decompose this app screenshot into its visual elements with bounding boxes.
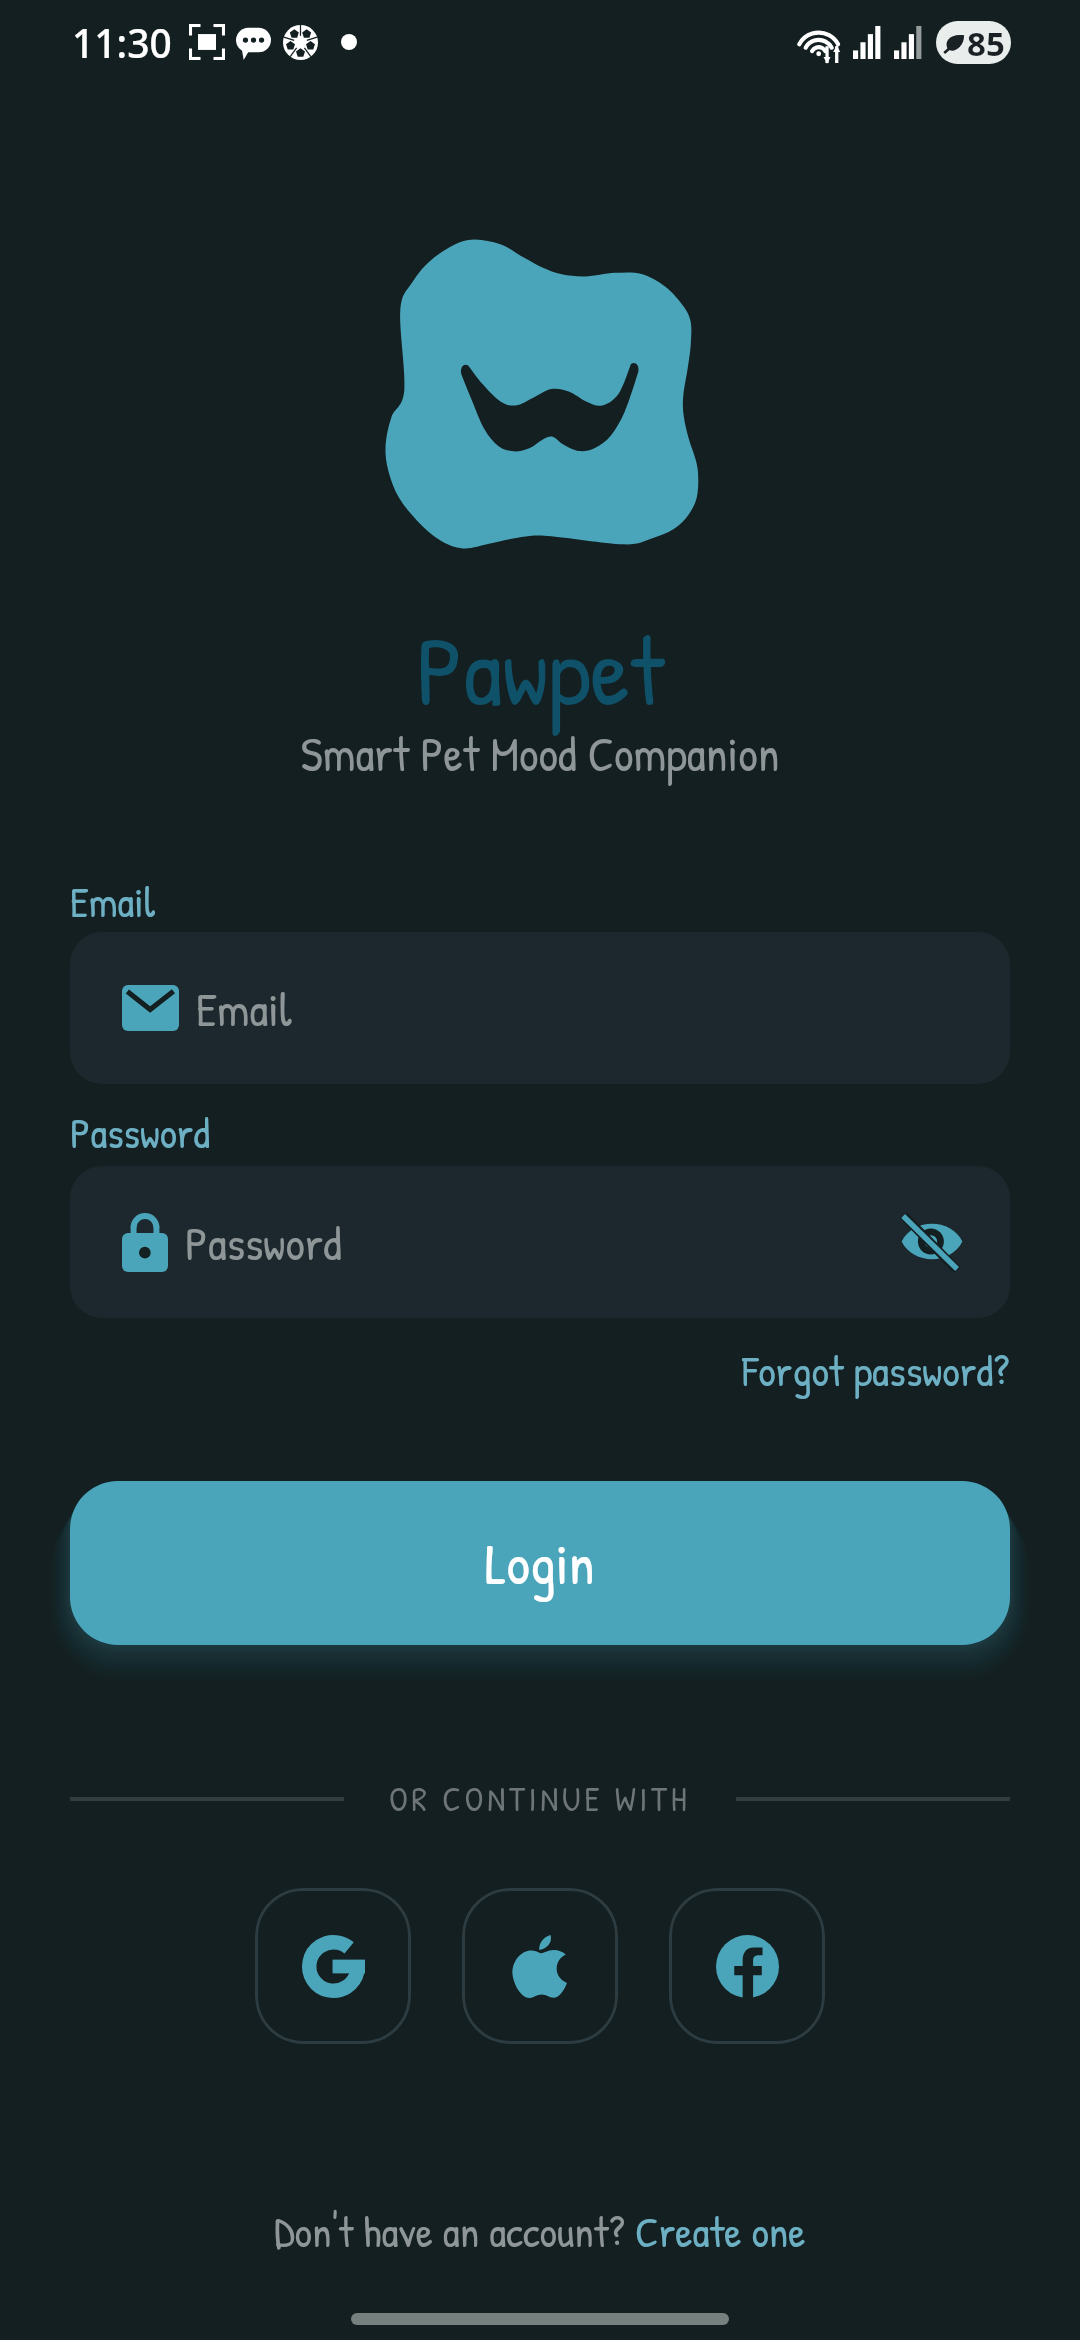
button[interactable]: Sign in with Apple: [462, 1888, 618, 2044]
staticText: Create one: [635, 2202, 806, 2260]
staticText: Email: [196, 976, 292, 1041]
staticText: Login: [485, 1524, 595, 1602]
staticText: Don't have an account?: [274, 2202, 635, 2260]
staticText: Smart Pet Mood Companion: [0, 721, 1080, 786]
button[interactable]: Show password: [896, 1206, 968, 1278]
staticText: Email: [70, 873, 156, 930]
staticText: Pawpet: [0, 602, 1080, 736]
staticText: Password: [185, 1210, 342, 1275]
button[interactable]: Login: [70, 1481, 1010, 1645]
button[interactable]: Password: [70, 1166, 1010, 1318]
staticText: Forgot password?: [742, 1341, 1010, 1399]
staticText: 85: [967, 21, 1005, 64]
staticText: OR CONTINUE WITH: [389, 1776, 691, 1822]
button[interactable]: Email: [70, 932, 1010, 1084]
staticText: Password: [70, 1104, 210, 1162]
staticText: 11:30: [72, 16, 172, 69]
button[interactable]: Sign in with Facebook: [669, 1888, 825, 2044]
button[interactable]: Create one: [635, 2202, 806, 2260]
button[interactable]: Forgot password?: [742, 1341, 1010, 1399]
button[interactable]: Sign in with Google: [255, 1888, 411, 2044]
